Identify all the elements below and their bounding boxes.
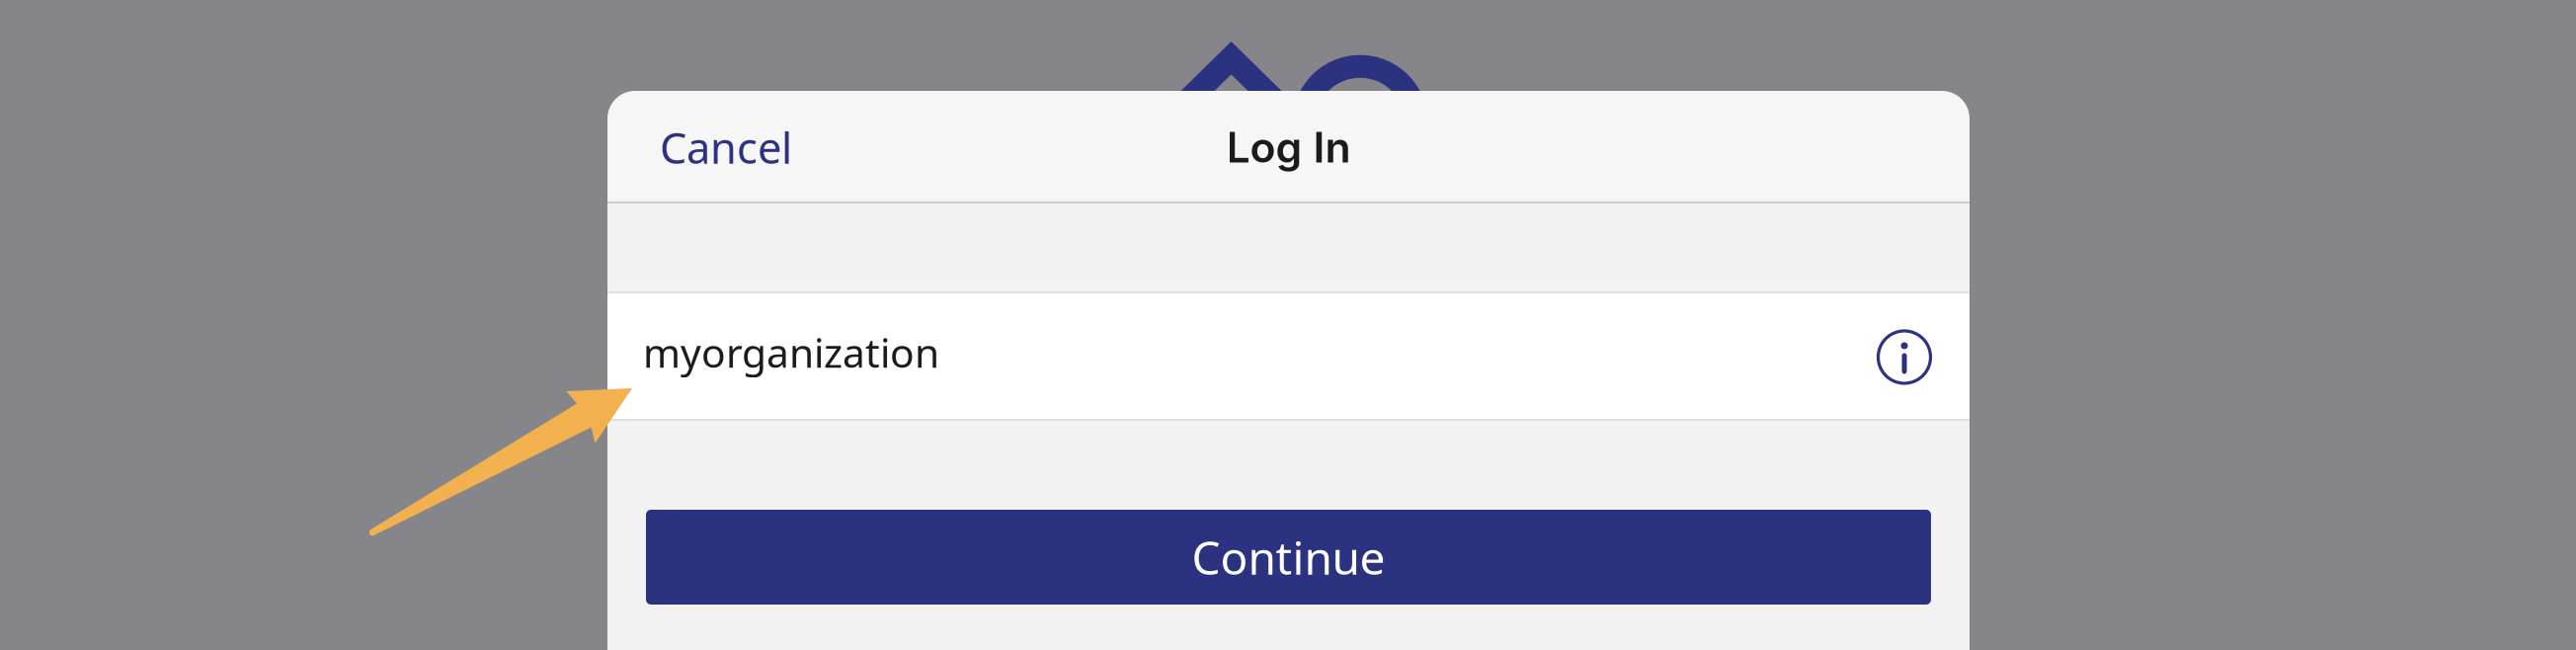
staticText: Cancel (660, 118, 792, 176)
button[interactable]: Cancel (646, 100, 806, 194)
staticText: Continue (1192, 526, 1385, 588)
staticText: myorganization (643, 325, 939, 380)
button[interactable]: Continue (646, 510, 1931, 605)
button[interactable]: myorganization (643, 291, 1876, 421)
button[interactable]: About the organisation field (1876, 328, 1931, 384)
staticText: Log In (1226, 122, 1351, 173)
